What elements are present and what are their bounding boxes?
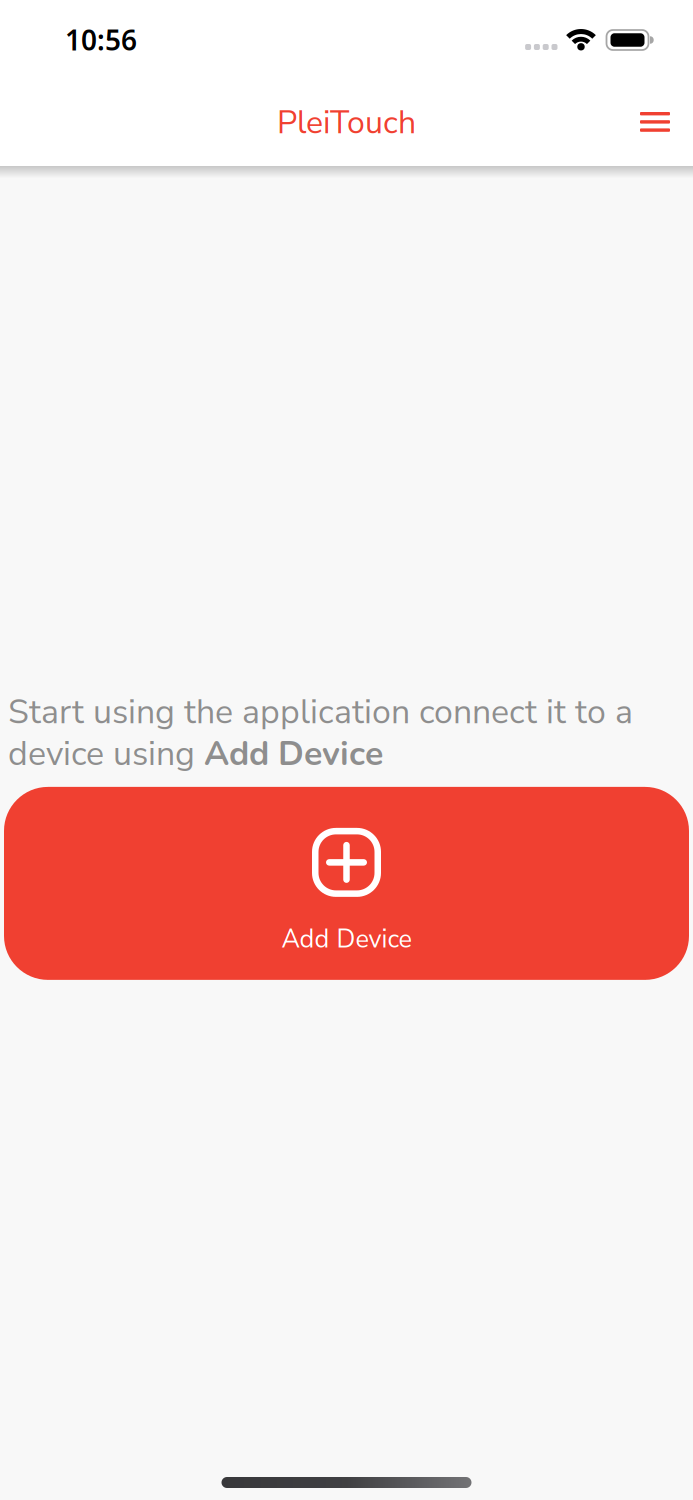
- staticText: Start using the application connect it t…: [8, 689, 633, 777]
- button[interactable]: Menu: [632, 104, 678, 140]
- staticText: PleiTouch: [277, 101, 416, 145]
- staticText: Add Device: [281, 922, 411, 956]
- button[interactable]: Add Device: [0, 787, 693, 980]
- staticText: 10:56: [65, 21, 137, 58]
